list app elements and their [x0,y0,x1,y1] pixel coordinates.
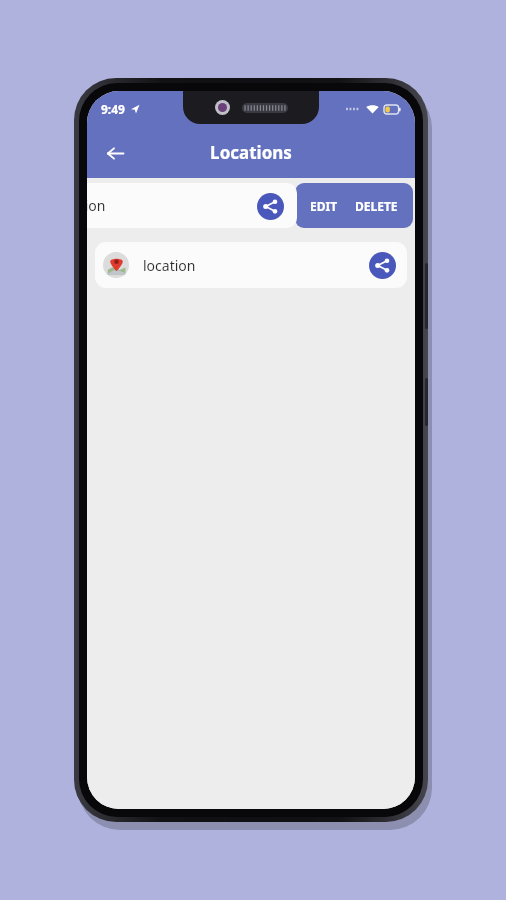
button[interactable]: Share [251,187,289,225]
staticText: DELETE [355,198,398,214]
button[interactable]: Share [363,246,401,284]
button[interactable]: location [95,242,407,288]
button[interactable]: EDIT [305,194,343,218]
button[interactable]: DELETE [350,194,403,218]
button[interactable]: location [87,183,297,228]
staticText: location [143,256,196,275]
button[interactable]: Back [93,131,137,175]
staticText: location [87,196,106,215]
staticText: 9:49 [101,101,125,117]
staticText: Locations [210,141,292,164]
staticText: EDIT [310,198,338,214]
